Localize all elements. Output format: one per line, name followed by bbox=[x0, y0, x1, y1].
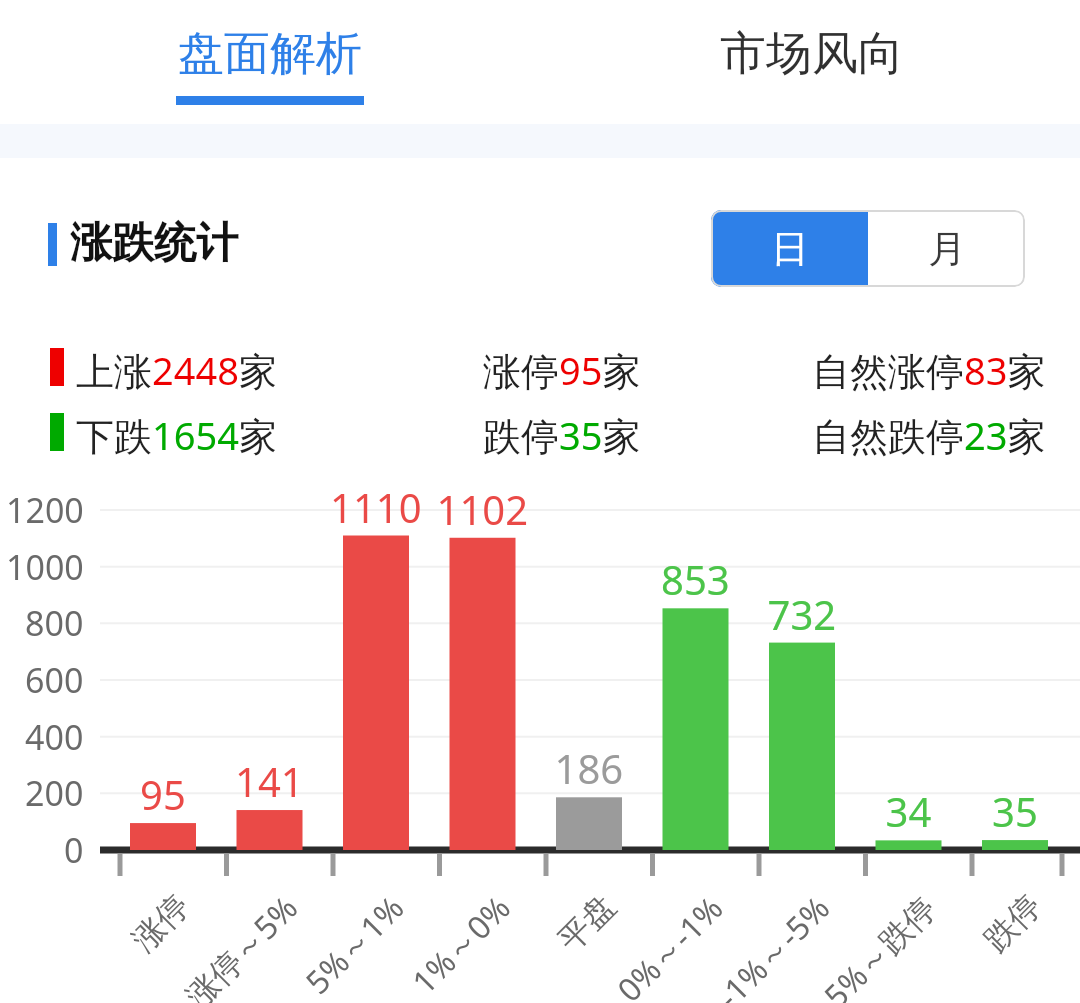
staticText: 日 bbox=[771, 225, 809, 273]
staticText: 月 bbox=[928, 225, 966, 273]
button[interactable]: 盘面解析 bbox=[130, 0, 410, 125]
staticText: 市场风向 bbox=[720, 25, 904, 83]
staticText: 盘面解析 bbox=[178, 25, 362, 83]
button[interactable]: 日 bbox=[711, 210, 868, 287]
staticText: 跌停35家 bbox=[483, 409, 641, 461]
staticText: 自然跌停23家 bbox=[812, 409, 1046, 461]
staticText: 涨跌统计 bbox=[70, 217, 238, 270]
button[interactable]: 市场风向 bbox=[672, 0, 952, 125]
staticText: 上涨2448家 bbox=[76, 344, 277, 396]
staticText: 下跌1654家 bbox=[76, 409, 277, 461]
staticText: 自然涨停83家 bbox=[812, 344, 1046, 396]
button[interactable]: 月 bbox=[868, 210, 1025, 287]
staticText: 涨停95家 bbox=[483, 344, 641, 396]
